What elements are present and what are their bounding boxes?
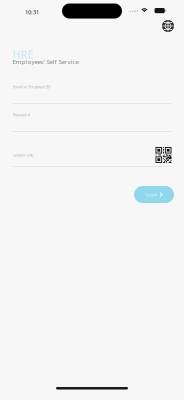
staticText: System URL bbox=[12, 152, 33, 158]
staticText: Employees' Self Service bbox=[12, 57, 78, 66]
staticText: Login bbox=[145, 192, 157, 197]
staticText: 10:31 bbox=[25, 8, 39, 16]
staticText: HRE bbox=[12, 47, 33, 61]
staticText: Email or Employee ID bbox=[12, 84, 50, 89]
button[interactable]: Login bbox=[134, 186, 174, 203]
staticText: Password bbox=[12, 112, 29, 117]
button[interactable]: Scan QR code bbox=[155, 147, 171, 163]
button[interactable]: Change language bbox=[162, 20, 174, 32]
